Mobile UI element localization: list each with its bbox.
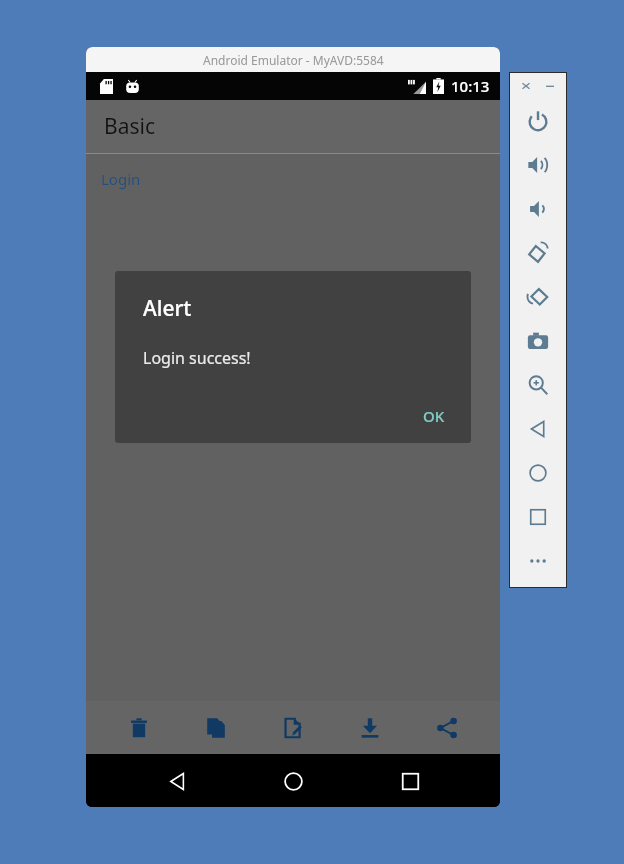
button[interactable]: Volume down [510,187,566,231]
button[interactable]: Screenshot [510,319,566,363]
button[interactable]: Recents [384,755,436,807]
button[interactable]: Home [267,755,319,807]
button[interactable]: OK [409,397,459,435]
button[interactable]: Edit document [269,704,317,752]
button[interactable]: Back [151,755,203,807]
button[interactable]: Volume up [510,143,566,187]
button[interactable]: Overview [510,495,566,539]
staticText: 10:13 [451,76,490,96]
button[interactable]: Rotate right [510,275,566,319]
staticText: Android Emulator - MyAVD:5584 [203,52,384,68]
staticText: Alert [143,294,192,323]
button[interactable]: Home [510,451,566,495]
button[interactable]: Power [510,99,566,143]
button[interactable]: Copy [192,704,240,752]
staticText: OK [423,406,445,426]
staticText: Login success! [143,347,251,369]
button[interactable]: Login [97,166,145,192]
button[interactable]: Close [518,78,534,94]
button[interactable]: Share [423,704,471,752]
button[interactable]: Rotate left [510,231,566,275]
staticText: Login [101,169,141,189]
button[interactable]: Download [346,704,394,752]
button[interactable]: Back [510,407,566,451]
button[interactable]: Minimize [542,78,558,94]
staticText: Basic [104,112,155,141]
button[interactable]: More [510,539,566,583]
button[interactable]: Zoom [510,363,566,407]
button[interactable]: Delete [115,704,163,752]
